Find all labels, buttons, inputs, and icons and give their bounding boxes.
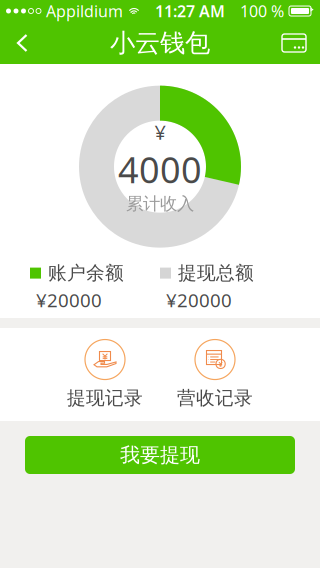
staticText: ¥	[154, 119, 165, 145]
button[interactable]: 提现记录	[50, 339, 160, 409]
button[interactable]: 我要提现	[25, 436, 295, 474]
staticText: 累计收入	[126, 193, 194, 214]
staticText: 4000	[118, 145, 202, 193]
staticText: 11:27 AM	[155, 0, 225, 22]
button[interactable]: Cards	[268, 22, 320, 64]
staticText: Appildium	[46, 0, 123, 22]
staticText: ¥20000	[166, 288, 232, 312]
staticText: 账户余额	[48, 262, 124, 284]
staticText: 我要提现	[120, 443, 200, 467]
staticText: 100 %	[240, 0, 284, 22]
staticText: ¥20000	[36, 288, 102, 312]
staticText: 提现记录	[67, 386, 143, 409]
staticText: 营收记录	[177, 386, 253, 409]
button[interactable]: 营收记录	[160, 339, 270, 409]
button[interactable]: Back	[0, 22, 44, 64]
staticText: 提现总额	[178, 262, 254, 284]
staticText: 小云钱包	[110, 27, 210, 58]
